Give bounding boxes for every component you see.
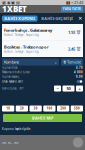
staticText: BAHİS GEÇMİŞİ: [41, 16, 73, 21]
staticText: 1XBET: [2, 4, 27, 14]
staticText: ▦ ◉ ▣ ▤: [2, 0, 20, 5]
staticText: Futbol. Türkiye. Süper Lig: [4, 33, 39, 37]
staticText: Size Ev... Size: [2, 141, 19, 144]
button[interactable]: BAHİS KUPONU: [2, 15, 37, 21]
staticText: 4.70: [76, 66, 83, 69]
staticText: 🗑: [76, 30, 81, 34]
staticText: ⌄: [54, 60, 57, 64]
button[interactable]: PARA YATIR: [61, 6, 83, 12]
staticText: Besiktas - Trabzonspor: [4, 44, 49, 49]
staticText: 4 000: [74, 70, 83, 74]
staticText: ▮▮ ⌁ 21:43: [66, 0, 83, 5]
staticText: BAHİS YAP: [32, 115, 53, 121]
button[interactable]: Azalt: [54, 85, 61, 91]
staticText: Futbol. Türkiye. Süper Lig: [4, 50, 39, 53]
staticText: ✕: [78, 15, 82, 22]
button[interactable]: Besiktas - Trabzonspor: [2, 41, 83, 57]
staticText: Toplam Oran: [2, 66, 18, 69]
staticText: Temizle: [67, 59, 81, 65]
button[interactable]: 500: [71, 105, 83, 111]
staticText: Fenerbahçe - Galatasaray: [4, 27, 52, 33]
staticText: 500: [74, 107, 80, 110]
staticText: Olası kazancı artır: [2, 80, 23, 83]
button[interactable]: BAHİS GEÇMİŞİ: [39, 15, 75, 21]
button[interactable]: BAHİS YAP: [3, 114, 82, 122]
staticText: 10: [6, 107, 10, 110]
button[interactable]: 50: [29, 105, 42, 111]
staticText: 🗑: [76, 47, 81, 51]
staticText: −: [56, 86, 58, 91]
staticText: 20: [20, 107, 24, 110]
button[interactable]: 200: [57, 105, 69, 111]
button[interactable]: 🗑: [61, 58, 83, 65]
staticText: BAHİS KUPONU: [4, 16, 35, 21]
button[interactable]: 20: [16, 105, 28, 111]
button[interactable]: Artır: [76, 85, 83, 91]
button[interactable]: Kuponu kaydet/yükle: [0, 123, 85, 135]
button[interactable]: 100: [43, 105, 55, 111]
button[interactable]: Fenerbahçe - Galatasaray: [2, 24, 83, 40]
staticText: PARA YATIR: [63, 7, 81, 11]
staticText: Kuponu kaydet/yükle: [2, 127, 31, 131]
button[interactable]: Olası kazancı artır: [76, 79, 83, 83]
staticText: 100: [46, 107, 52, 110]
staticText: 2.45: [68, 46, 75, 51]
staticText: +: [78, 86, 80, 91]
staticText: Toplam kazanç: [2, 75, 19, 78]
staticText: Kombine: [4, 59, 19, 65]
staticText: 0.00: [76, 75, 83, 78]
button[interactable]: Kapat: [77, 15, 83, 21]
button[interactable]: 10: [2, 105, 14, 111]
staticText: 1.92: [68, 29, 75, 35]
staticText: 200: [60, 107, 66, 110]
staticText: 50: [34, 107, 38, 110]
button[interactable]: Kombine: [2, 58, 59, 65]
staticText: 🗑: [63, 60, 66, 63]
staticText: 50: [66, 86, 70, 91]
staticText: Maksimum bahis tutarı: [2, 70, 30, 74]
staticText: Bahis tutarı, TRY: [2, 87, 24, 90]
